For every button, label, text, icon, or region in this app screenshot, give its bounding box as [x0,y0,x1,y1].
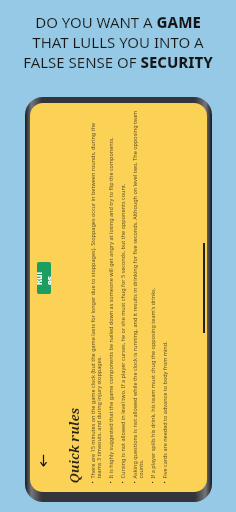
staticText: Quick rules [64,407,82,483]
staticText: • [160,480,168,483]
staticText: If a player spills his drink, his team m… [148,287,155,478]
staticText: Five cards are needed to advance to body… [160,340,167,478]
button[interactable]: Scroll down [36,453,51,468]
button[interactable]: Rules [37,262,51,294]
staticText: Rules [37,271,51,285]
staticText: • [130,480,138,483]
staticText: Asking questions is not allowed while th… [130,110,144,478]
staticText: There are 15 minutes on the game clock (… [88,110,102,478]
staticText: • [118,480,126,483]
staticText: FALSE SENSE OF SECURITY [23,52,213,72]
staticText: • [88,480,96,483]
staticText: • [106,480,114,483]
staticText: THAT LULLS YOU INTO A [32,32,204,52]
staticText: DO YOU WANT A GAME [35,12,201,32]
staticText: It is highly suggested that the game com… [106,136,113,478]
staticText: Cursing is not allowed in level two. If … [118,183,125,478]
staticText: • [148,480,156,483]
